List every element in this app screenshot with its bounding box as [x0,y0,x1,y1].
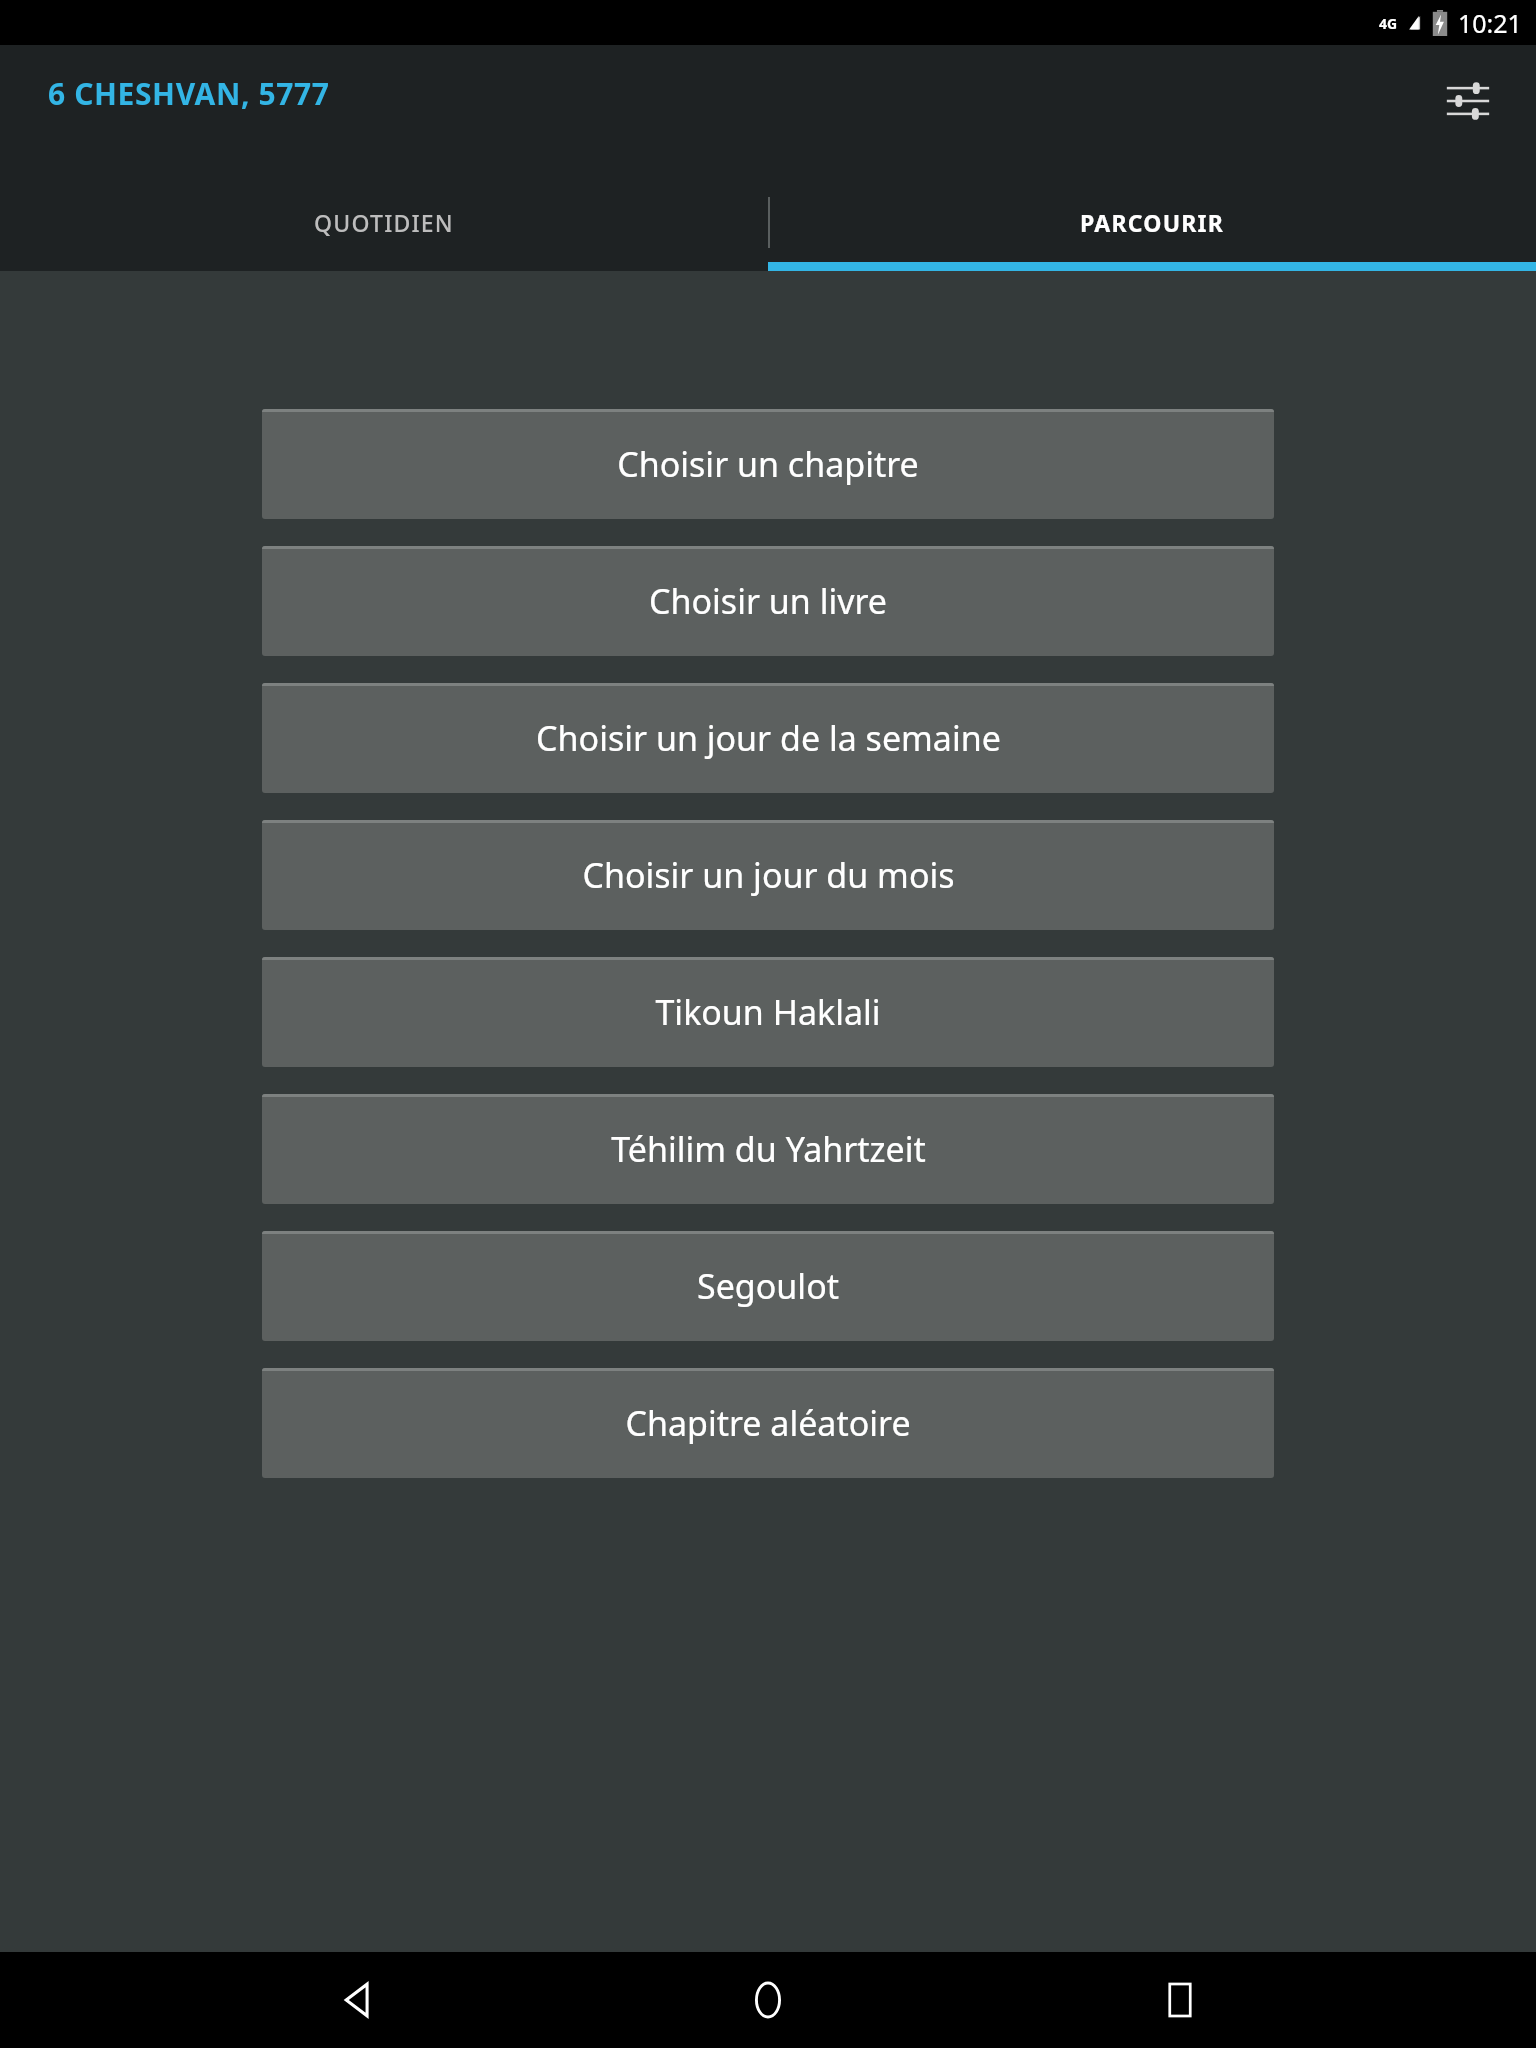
staticText: 6 CHESHVAN, 5777 [48,73,330,114]
staticText: Tikoun Haklali [655,989,881,1035]
button[interactable]: Téhilim du Yahrtzeit [262,1094,1274,1204]
staticText: QUOTIDIEN [314,207,454,238]
staticText: 10:21 [1458,6,1522,40]
staticText: Choisir un chapitre [617,441,919,487]
button[interactable]: Tikoun Haklali [262,957,1274,1067]
staticText: Choisir un livre [649,578,887,624]
staticText: Choisir un jour de la semaine [536,715,1001,761]
staticText: Segoulot [697,1263,839,1309]
button[interactable]: Choisir un chapitre [262,409,1274,519]
staticText: Choisir un jour du mois [582,852,955,898]
staticText: Téhilim du Yahrtzeit [611,1126,926,1172]
staticText: PARCOURIR [1080,207,1224,238]
button[interactable]: Choisir un jour du mois [262,820,1274,930]
button[interactable]: Home [713,1952,823,2048]
button[interactable]: QUOTIDIEN [0,189,768,271]
button[interactable]: Settings [1426,59,1510,143]
button[interactable]: Choisir un livre [262,546,1274,656]
button[interactable]: PARCOURIR [768,189,1536,271]
button[interactable]: Back [302,1952,412,2048]
button[interactable]: Choisir un jour de la semaine [262,683,1274,793]
staticText: 4G [1379,14,1398,33]
staticText: Chapitre aléatoire [625,1400,911,1446]
button[interactable]: Chapitre aléatoire [262,1368,1274,1478]
button[interactable]: Recent apps [1125,1952,1235,2048]
button[interactable]: Segoulot [262,1231,1274,1341]
